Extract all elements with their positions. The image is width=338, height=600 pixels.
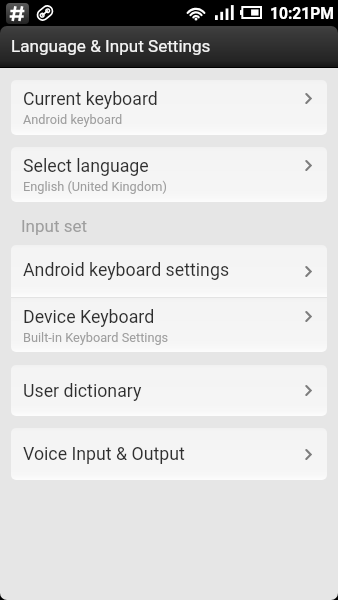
button[interactable]: Android keyboard settings	[11, 245, 327, 297]
other: Wi-Fi	[187, 4, 205, 20]
other: Signal strength	[215, 5, 233, 20]
other: USB connected	[36, 4, 54, 22]
staticText: Built-in Keyboard Settings	[23, 330, 169, 345]
staticText: Android keyboard settings	[23, 260, 230, 281]
other: Battery	[240, 7, 261, 18]
button[interactable]: Device Keyboard	[11, 298, 327, 352]
staticText: Android keyboard	[23, 112, 123, 127]
staticText: Device Keyboard	[23, 307, 155, 328]
staticText: Voice Input & Output	[23, 444, 185, 465]
staticText: Select language	[23, 156, 149, 177]
staticText: Language & Input Settings	[11, 36, 211, 56]
staticText: English (United Kingdom)	[23, 179, 167, 194]
button[interactable]: Current keyboard	[11, 80, 327, 135]
button[interactable]: User dictionary	[11, 365, 327, 416]
button[interactable]: Select language	[11, 147, 327, 202]
staticText: Input set	[21, 216, 88, 236]
staticText: User dictionary	[23, 381, 142, 402]
button[interactable]: Voice Input & Output	[11, 428, 327, 480]
staticText: Current keyboard	[23, 89, 158, 110]
staticText: 10:21PM	[270, 5, 334, 23]
other: Messages notification	[6, 3, 29, 24]
